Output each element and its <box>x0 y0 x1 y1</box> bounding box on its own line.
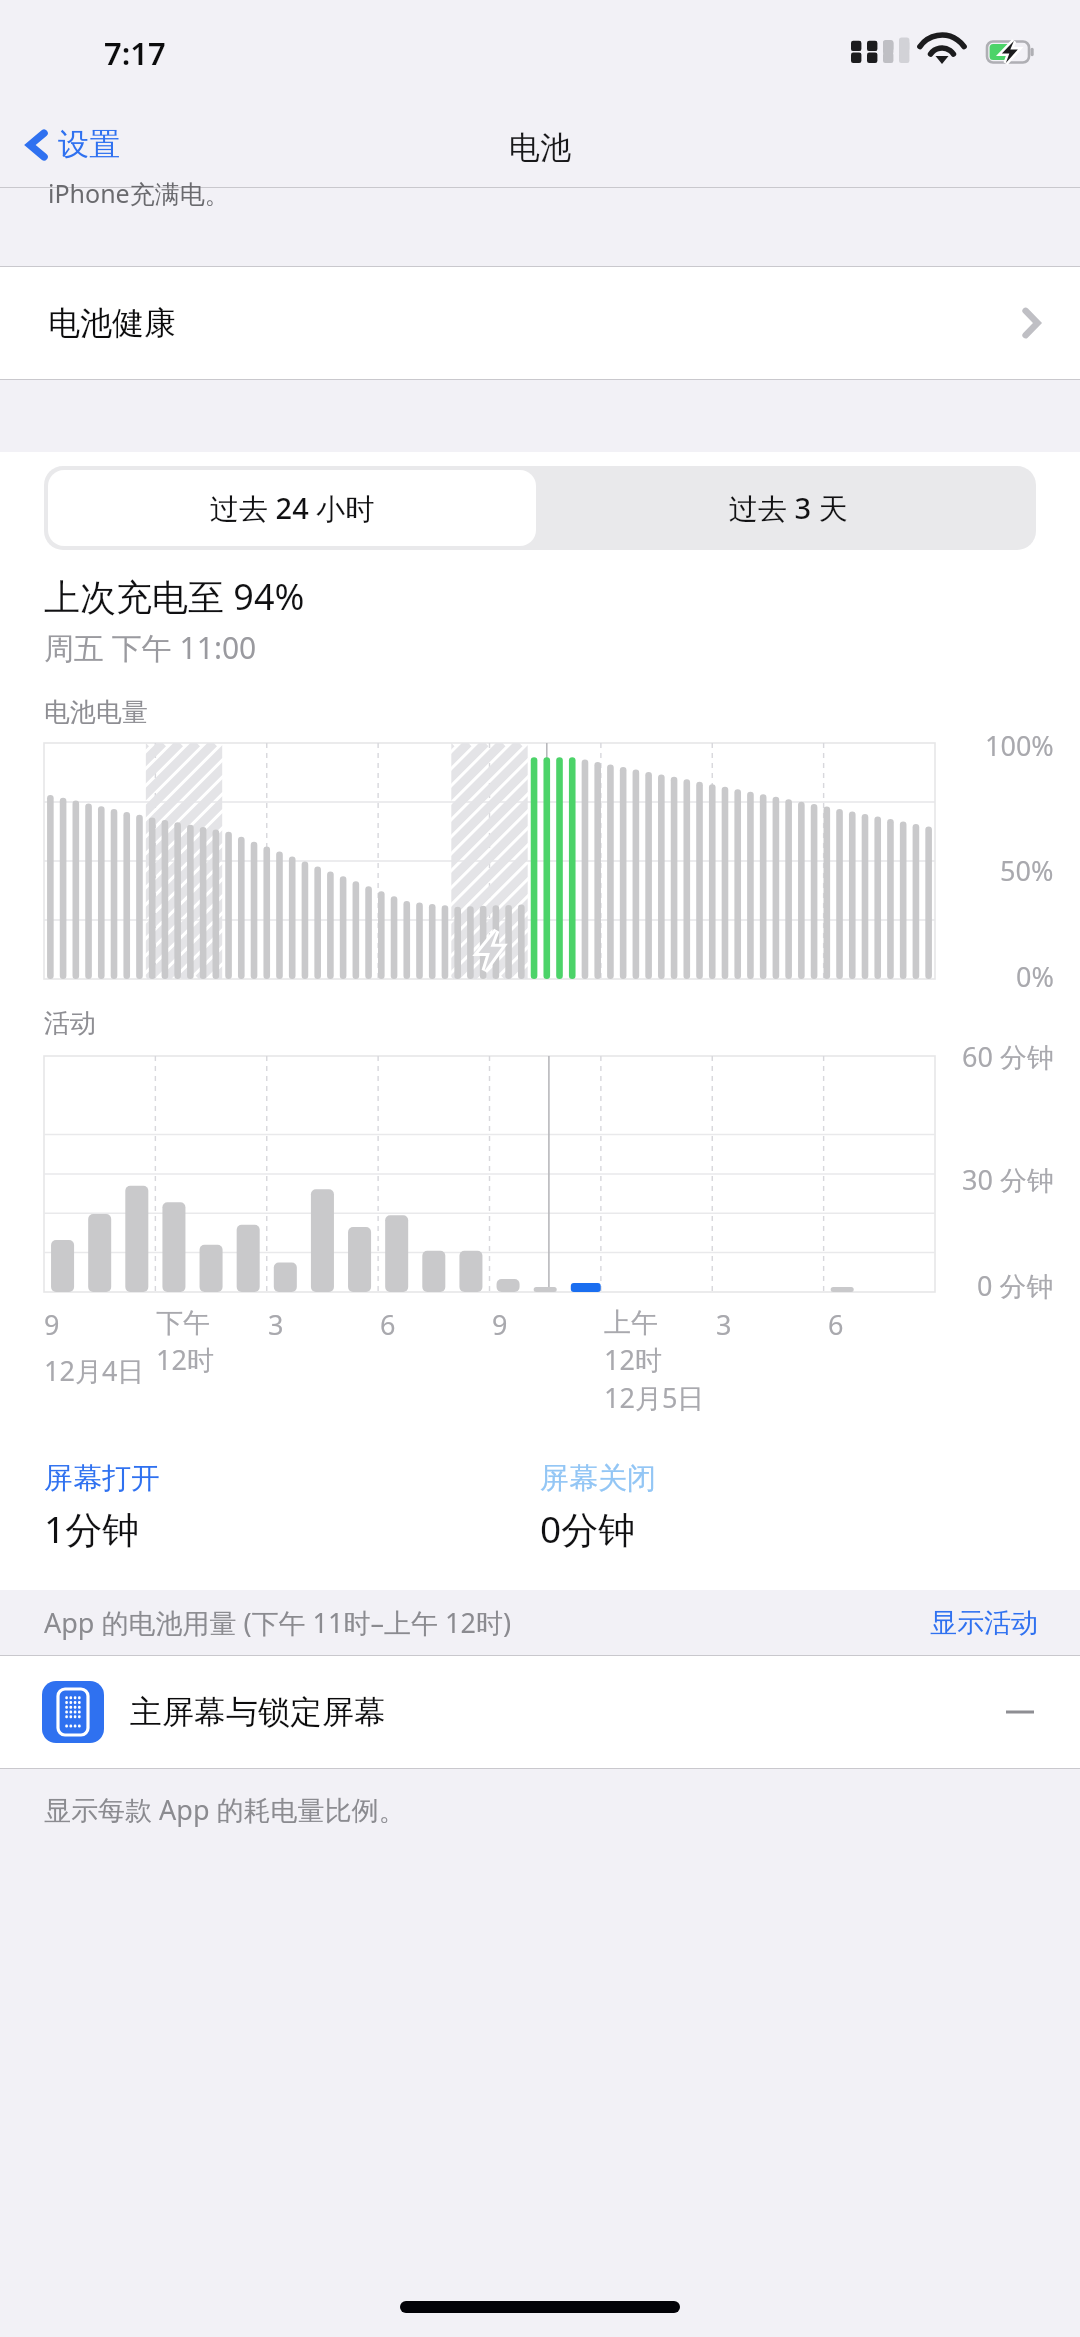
staticText: 9 <box>44 1306 60 1343</box>
button[interactable]: 设置 <box>0 117 134 172</box>
button[interactable]: 过去 3 天 <box>540 466 1036 550</box>
staticText: 30 分钟 <box>962 1161 1054 1198</box>
staticText: 上午 12时 12月5日 <box>604 1306 705 1416</box>
staticText: 3 <box>268 1306 284 1343</box>
staticText: 屏幕关闭 <box>540 1460 656 1497</box>
button[interactable]: 主屏幕与锁定屏幕 <box>0 1656 1080 1768</box>
staticText: 6 <box>828 1306 844 1343</box>
staticText: 周五 下午 11:00 <box>44 627 257 668</box>
staticText: iPhone充满电。 <box>48 176 230 210</box>
staticText: 屏幕打开 <box>44 1460 160 1497</box>
staticText: 显示活动 <box>930 1606 1038 1640</box>
staticText: 50% <box>1000 852 1054 889</box>
staticText: 3 <box>716 1306 732 1343</box>
staticText: 6 <box>380 1306 396 1343</box>
staticText: 0% <box>1016 958 1054 995</box>
staticText: 60 分钟 <box>962 1038 1054 1075</box>
staticText: 0分钟 <box>540 1503 636 1554</box>
staticText: App 的电池用量 (下午 11时–上午 12时) <box>44 1604 512 1641</box>
staticText: 电池 <box>509 128 571 167</box>
button[interactable]: 显示活动 <box>930 1606 1038 1640</box>
staticText: 主屏幕与锁定屏幕 <box>130 1692 386 1732</box>
staticText: 上次充电至 94% <box>44 572 305 621</box>
staticText: 活动 <box>44 1007 96 1040</box>
staticText: 0 分钟 <box>977 1267 1054 1304</box>
staticText: 过去 24 小时 <box>210 488 375 528</box>
staticText: 显示每款 App 的耗电量比例。 <box>44 1791 406 1828</box>
staticText: 电池健康 <box>48 303 176 343</box>
button[interactable]: 电池健康 <box>0 267 1080 379</box>
staticText: 100% <box>985 727 1054 764</box>
staticText: 下午 12时 <box>156 1306 214 1378</box>
staticText: 7:17 <box>104 32 166 74</box>
staticText: 电池电量 <box>44 696 148 729</box>
staticText: 过去 3 天 <box>729 488 848 528</box>
button[interactable]: 过去 24 小时 <box>48 470 536 546</box>
staticText: 1分钟 <box>44 1503 140 1554</box>
staticText: 设置 <box>58 125 120 164</box>
staticText: 9 <box>492 1306 508 1343</box>
staticText: 12月4日 <box>44 1352 145 1389</box>
